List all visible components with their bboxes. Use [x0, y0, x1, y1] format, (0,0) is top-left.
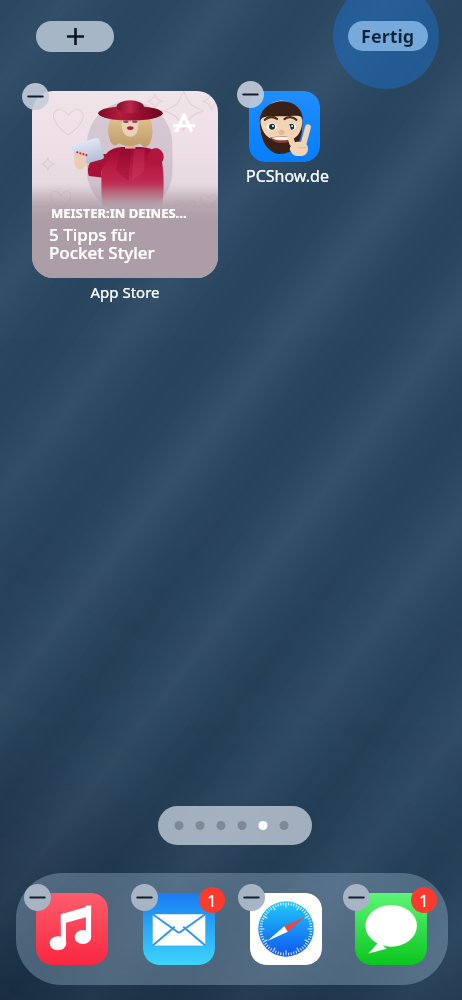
button[interactable]: Messages	[355, 893, 427, 965]
staticText: 1	[207, 889, 217, 912]
staticText: PCShow.de	[246, 165, 329, 187]
button[interactable]: Music	[36, 893, 108, 965]
button[interactable]: Fertig	[348, 21, 428, 51]
button[interactable]: Mail	[143, 893, 215, 965]
staticText: App Store	[90, 282, 160, 302]
button[interactable]: Safari	[250, 893, 322, 965]
button[interactable]: MEISTER:IN DEINES...	[32, 91, 218, 278]
staticText: 1	[419, 889, 429, 912]
button[interactable]: Add widget	[36, 21, 114, 52]
staticText: Fertig	[361, 24, 415, 49]
button[interactable]: Page indicator	[158, 806, 312, 845]
staticText: 5 Tipps für Pocket Styler	[49, 223, 155, 264]
button[interactable]: PCShow.de	[249, 91, 320, 162]
staticText: MEISTER:IN DEINES...	[51, 204, 187, 222]
